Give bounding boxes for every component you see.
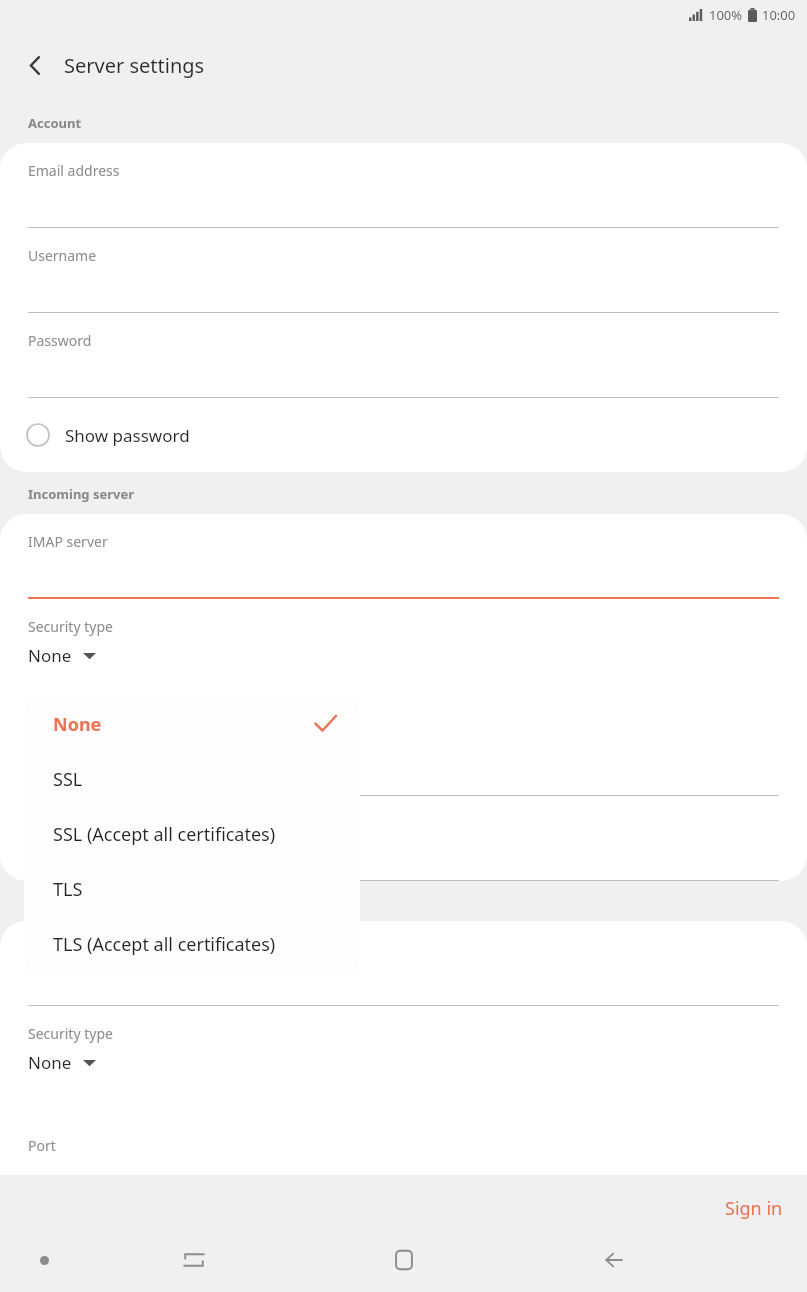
button[interactable]: Username — [0, 228, 807, 313]
staticText: SSL (Accept all certificates) — [53, 822, 276, 847]
staticText: Password — [28, 331, 92, 350]
button[interactable]: Email address — [0, 143, 807, 228]
button[interactable]: None — [24, 642, 104, 671]
staticText: 100% — [709, 6, 743, 24]
button[interactable]: Home — [299, 1228, 509, 1292]
button[interactable]: IMAP path prefix — [0, 796, 807, 881]
staticText: Username — [28, 246, 97, 265]
staticText: Server settings — [64, 52, 205, 79]
button[interactable]: Port — [0, 711, 807, 796]
staticText: IMAP server — [28, 532, 108, 551]
staticText: Show password — [65, 424, 190, 447]
button[interactable]: Navigate up — [13, 43, 57, 87]
button[interactable]: SSL — [24, 752, 360, 807]
button[interactable]: SMTP server — [0, 921, 807, 1006]
button[interactable]: SSL (Accept all certificates) — [24, 807, 360, 862]
button[interactable]: None — [24, 696, 360, 752]
button[interactable]: Recents — [88, 1228, 299, 1292]
staticText: Port — [28, 1136, 56, 1155]
staticText: None — [28, 1051, 72, 1074]
staticText: Security type — [28, 617, 113, 636]
staticText: TLS (Accept all certificates) — [53, 932, 276, 957]
staticText: Sign in — [725, 1196, 783, 1221]
button[interactable]: Sign in — [709, 1187, 799, 1230]
button[interactable]: TLS — [24, 862, 360, 917]
button[interactable]: Password — [0, 313, 807, 398]
staticText: Email address — [28, 161, 120, 180]
staticText: None — [28, 644, 72, 667]
staticText: Port — [28, 729, 56, 748]
staticText: SSL — [53, 767, 83, 792]
button[interactable]: None — [24, 1049, 104, 1078]
staticText: None — [53, 712, 314, 737]
staticText: IMAP path prefix — [28, 814, 139, 833]
staticText: TLS — [53, 877, 83, 902]
button[interactable]: Back — [509, 1228, 719, 1292]
button[interactable]: IMAP server — [0, 514, 807, 599]
staticText: Security type — [28, 1024, 113, 1043]
staticText: Account — [28, 114, 82, 132]
staticText: SMTP server — [28, 939, 110, 958]
button[interactable]: TLS (Accept all certificates) — [24, 917, 360, 972]
staticText: 10:00 — [762, 6, 796, 24]
staticText: Incoming server — [28, 485, 135, 503]
button[interactable]: Show password — [0, 398, 807, 472]
